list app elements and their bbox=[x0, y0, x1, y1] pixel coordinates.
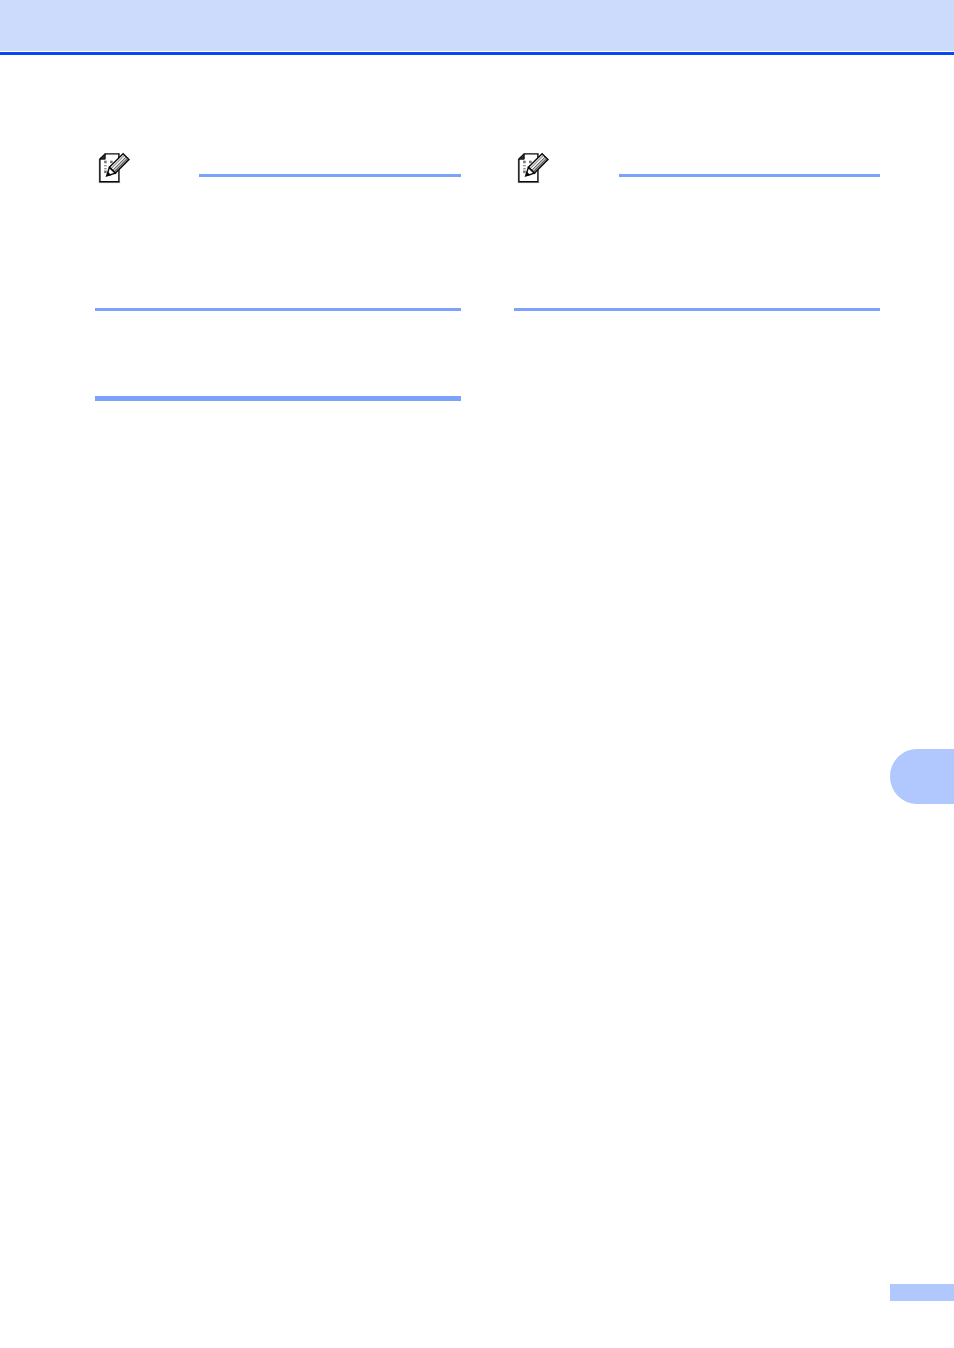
button[interactable]: Note bbox=[97, 152, 131, 186]
button[interactable]: Note bbox=[516, 152, 550, 186]
button[interactable]: Chapter tab bbox=[890, 749, 954, 804]
